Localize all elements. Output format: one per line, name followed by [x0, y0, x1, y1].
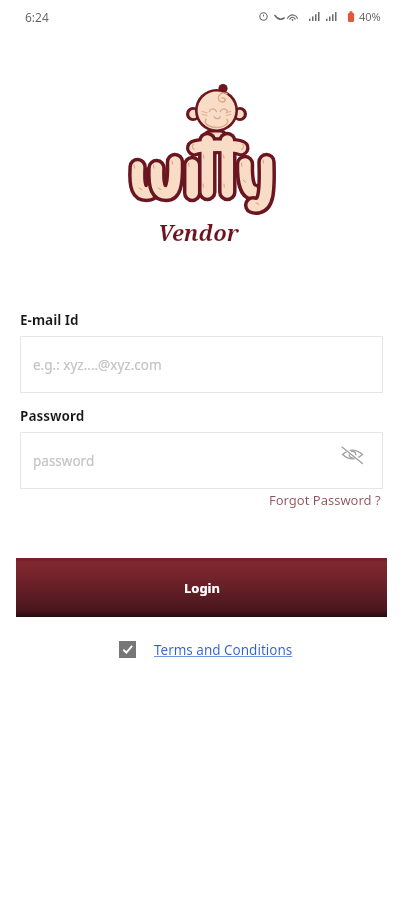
staticText: Vendor	[158, 217, 239, 247]
staticText: 6:24	[25, 9, 49, 25]
button[interactable]: Forgot Password ?	[271, 491, 383, 509]
staticText: Password	[20, 407, 85, 425]
button[interactable]: Accept Terms and Conditions	[119, 641, 136, 658]
staticText: Login	[184, 579, 220, 597]
staticText: password	[33, 452, 95, 470]
button[interactable]: Show password	[338, 440, 366, 468]
button[interactable]: password	[20, 432, 383, 489]
staticText: 40%	[359, 9, 381, 24]
button[interactable]: Terms and Conditions	[154, 641, 293, 659]
button[interactable]: e.g.: xyz....@xyz.com	[20, 336, 383, 393]
button[interactable]: Login	[16, 558, 387, 617]
staticText: E-mail Id	[20, 311, 79, 329]
staticText: e.g.: xyz....@xyz.com	[33, 356, 162, 374]
